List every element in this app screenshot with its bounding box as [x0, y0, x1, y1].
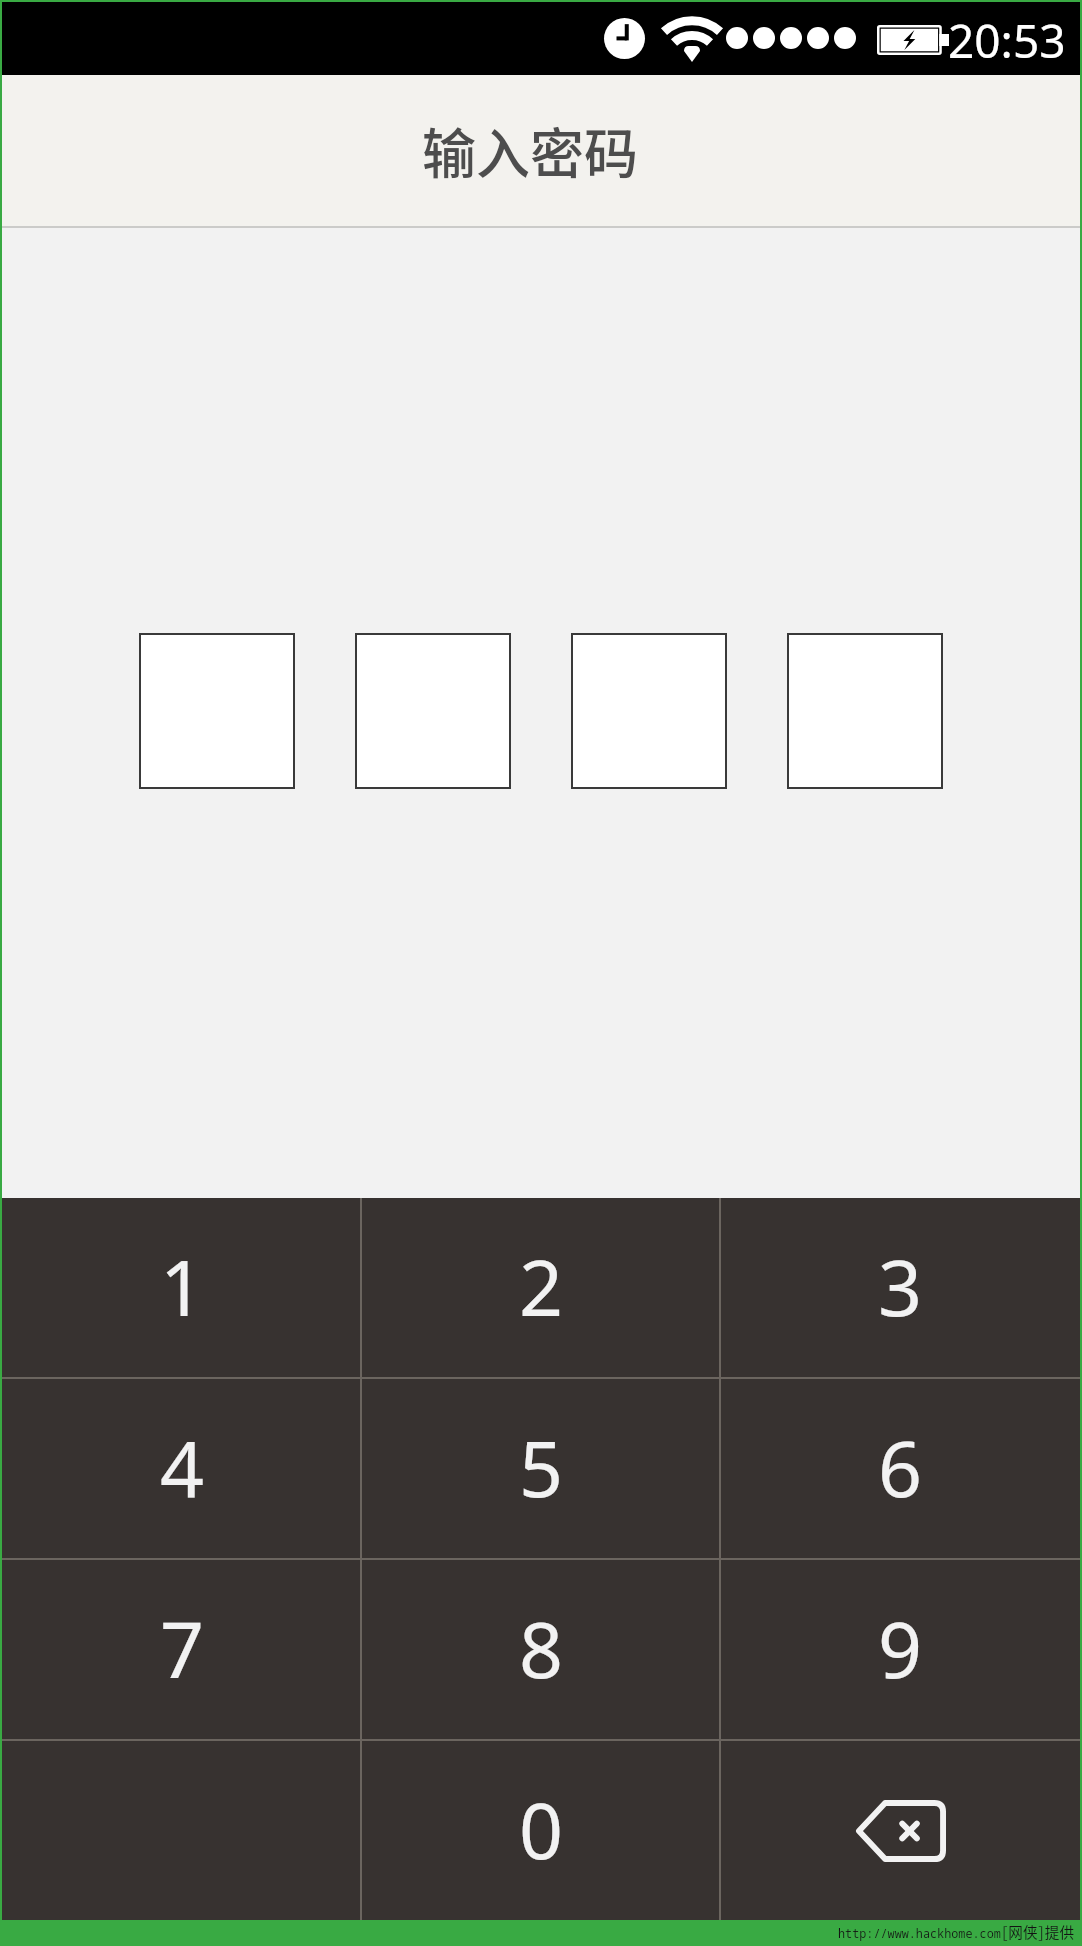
staticText: 4: [160, 1415, 205, 1520]
button[interactable]: 0: [362, 1741, 721, 1920]
staticText: 20:53: [948, 9, 1066, 72]
staticText: 8: [519, 1596, 564, 1701]
staticText: 1: [160, 1234, 205, 1339]
staticText: http://www.hackhome.com: [838, 1925, 1001, 1941]
staticText: 3: [878, 1234, 923, 1339]
staticText: 输入密码: [422, 111, 638, 189]
button[interactable]: 1: [2, 1198, 362, 1377]
staticText: 0: [519, 1777, 564, 1882]
button[interactable]: 3: [721, 1198, 1080, 1377]
button[interactable]: 9: [721, 1560, 1080, 1739]
button[interactable]: 4: [2, 1379, 362, 1558]
button[interactable]: 6: [721, 1379, 1080, 1558]
button[interactable]: 7: [2, 1560, 362, 1739]
staticText: [网侠]提供: [1001, 1921, 1074, 1942]
staticText: 7: [160, 1596, 205, 1701]
staticText: 5: [519, 1415, 564, 1520]
button[interactable]: 5: [362, 1379, 721, 1558]
button[interactable]: 2: [362, 1198, 721, 1377]
staticText: 6: [878, 1415, 923, 1520]
button[interactable]: 8: [362, 1560, 721, 1739]
staticText: 2: [519, 1234, 564, 1339]
button[interactable]: Backspace: [721, 1741, 1080, 1920]
staticText: 9: [878, 1596, 923, 1701]
